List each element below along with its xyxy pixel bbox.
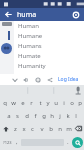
button[interactable]: Humans [14, 41, 84, 51]
staticText: k [66, 112, 70, 120]
button[interactable]: b [46, 122, 55, 135]
button[interactable]: s [13, 109, 22, 122]
staticText: huma [17, 10, 37, 20]
button[interactable]: f [31, 109, 40, 122]
staticText: h [50, 112, 54, 120]
staticText: v [40, 125, 44, 133]
button[interactable]: Search [72, 137, 83, 148]
staticText: b [49, 125, 53, 133]
button[interactable]: h [48, 109, 56, 122]
button[interactable]: x [19, 122, 28, 135]
staticText: e [21, 99, 25, 107]
button[interactable]: n [55, 122, 64, 135]
button[interactable]: a [4, 109, 13, 122]
button[interactable]: k [64, 109, 72, 122]
button[interactable]: Hide [10, 75, 20, 85]
staticText: z [14, 125, 17, 133]
staticText: Humanity [18, 62, 46, 70]
staticText: f [34, 112, 37, 120]
button[interactable]: z [11, 122, 19, 135]
staticText: Humane [18, 32, 43, 40]
button[interactable]: p [76, 96, 84, 109]
staticText: q [3, 99, 7, 107]
button[interactable]: u [52, 96, 60, 109]
staticText: p [78, 99, 82, 107]
button[interactable]: Settings [33, 75, 43, 85]
staticText: Log Idea [58, 76, 79, 83]
staticText: d [25, 112, 29, 120]
staticText: n [58, 125, 62, 133]
staticText: m [66, 125, 72, 133]
staticText: Human [18, 22, 39, 30]
button[interactable]: v [37, 122, 46, 135]
button[interactable]: Humate [14, 51, 84, 61]
staticText: a [7, 112, 11, 120]
button[interactable]: o [68, 96, 76, 109]
staticText: , [16, 138, 18, 146]
staticText: y [46, 99, 50, 107]
button[interactable]: , [13, 135, 21, 149]
button[interactable]: e [18, 96, 27, 109]
button[interactable]: d [22, 109, 31, 122]
button[interactable]: j [56, 109, 64, 122]
button[interactable]: Volume [21, 75, 31, 85]
button[interactable]: w [9, 96, 18, 109]
staticText: o [70, 99, 74, 107]
button[interactable]: g [40, 109, 48, 122]
button[interactable]: y [44, 96, 52, 109]
button[interactable]: Human [14, 21, 84, 31]
staticText: x [22, 125, 26, 133]
button[interactable]: c [28, 122, 37, 135]
button[interactable]: Humane [14, 31, 84, 41]
button[interactable]: r [27, 96, 36, 109]
button[interactable]: Log Idea [57, 76, 80, 83]
button[interactable]: Backspace [73, 122, 84, 135]
staticText: ?123 [3, 140, 12, 145]
button[interactable]: m [64, 122, 73, 135]
button[interactable]: Humanity [14, 61, 84, 71]
button[interactable]: Shift [0, 122, 11, 135]
button[interactable]: i [60, 96, 68, 109]
staticText: i [63, 99, 65, 107]
button[interactable]: Profile [1, 43, 12, 54]
staticText: w [11, 99, 16, 107]
button[interactable]: t [36, 96, 44, 109]
button[interactable]: Share [45, 75, 55, 85]
staticText: r [30, 99, 33, 107]
staticText: j [59, 112, 61, 120]
staticText: t [39, 99, 42, 107]
button[interactable]: l [72, 109, 80, 122]
button[interactable]: Settings [70, 9, 81, 20]
staticText: Humans [18, 42, 42, 50]
button[interactable]: Voice input [73, 85, 84, 96]
staticText: . [67, 138, 69, 146]
button[interactable]: Back [3, 9, 14, 20]
button[interactable]: . [64, 135, 72, 149]
button[interactable]: ?123 [1, 135, 13, 149]
button[interactable]: q [0, 96, 9, 109]
staticText: s [16, 112, 19, 120]
staticText: g [42, 112, 46, 120]
staticText: Humate [18, 52, 41, 60]
staticText: c [31, 125, 34, 133]
staticText: l [75, 112, 77, 120]
staticText: u [54, 99, 58, 107]
